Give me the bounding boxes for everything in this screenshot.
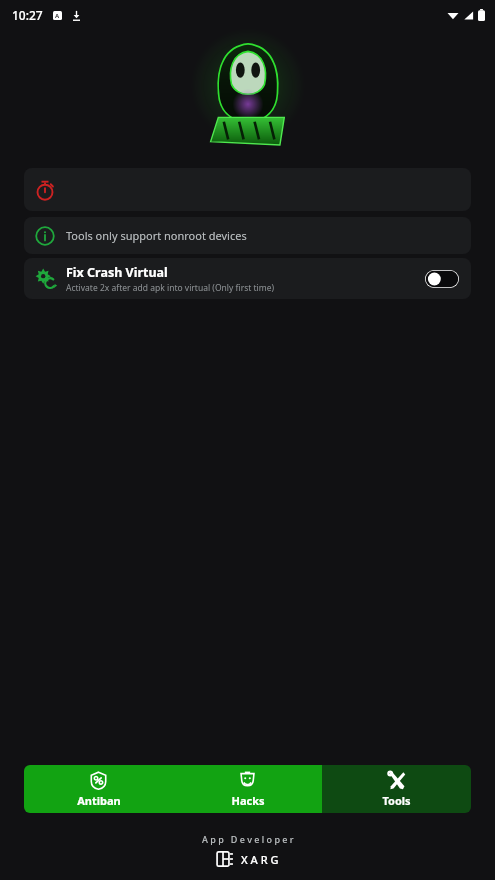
button[interactable]: Antiban xyxy=(24,765,173,813)
button[interactable]: Hacks xyxy=(173,765,322,813)
button[interactable]: Fix Crash Virtual xyxy=(24,258,471,299)
button[interactable]: Fix Crash Virtual toggle xyxy=(425,270,459,288)
button[interactable]: Timer xyxy=(24,168,471,211)
button[interactable]: Tools xyxy=(322,765,471,813)
staticText: Tools only support nonroot devices xyxy=(66,228,247,243)
button[interactable]: Tools only support nonroot devices xyxy=(24,217,471,254)
staticText: 10:27 xyxy=(12,7,43,23)
staticText: Hacks xyxy=(231,793,265,808)
staticText: Antiban xyxy=(77,793,121,808)
staticText: A xyxy=(55,12,60,20)
staticText: Activate 2x after add apk into virtual (… xyxy=(66,282,275,294)
staticText: Fix Crash Virtual xyxy=(66,264,168,281)
staticText: X A R G xyxy=(241,852,279,867)
staticText: A p p D e v e l o p e r xyxy=(202,833,294,845)
staticText: Tools xyxy=(382,793,411,808)
